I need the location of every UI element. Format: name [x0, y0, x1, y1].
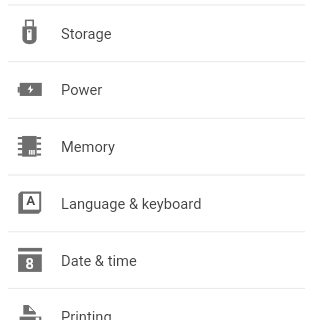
button[interactable]: Date & time [0, 232, 320, 289]
staticText: Storage [61, 25, 112, 42]
staticText: Printing [61, 308, 112, 320]
staticText: Language & keyboard [61, 195, 202, 212]
staticText: Date & time [61, 252, 137, 269]
button[interactable]: Storage [0, 5, 320, 62]
button[interactable]: Printing [0, 288, 320, 320]
button[interactable]: Language & keyboard [0, 175, 320, 232]
button[interactable]: Memory [0, 118, 320, 175]
button[interactable]: Power [0, 61, 320, 118]
staticText: Power [61, 81, 103, 98]
staticText: Memory [61, 138, 115, 155]
